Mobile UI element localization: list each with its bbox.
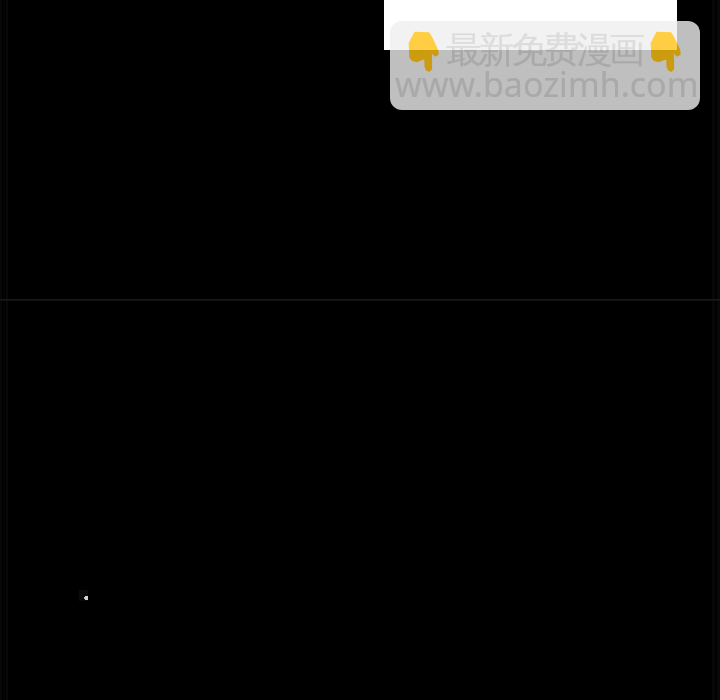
button[interactable]: Pointing down <box>0 0 720 700</box>
staticText: www.baozimh.com <box>395 61 699 107</box>
other: Pointing down <box>406 31 439 72</box>
button[interactable]: Pointing down <box>390 21 700 110</box>
other: Pointing down <box>648 31 681 72</box>
staticText: 最新免费漫画 <box>446 27 642 72</box>
